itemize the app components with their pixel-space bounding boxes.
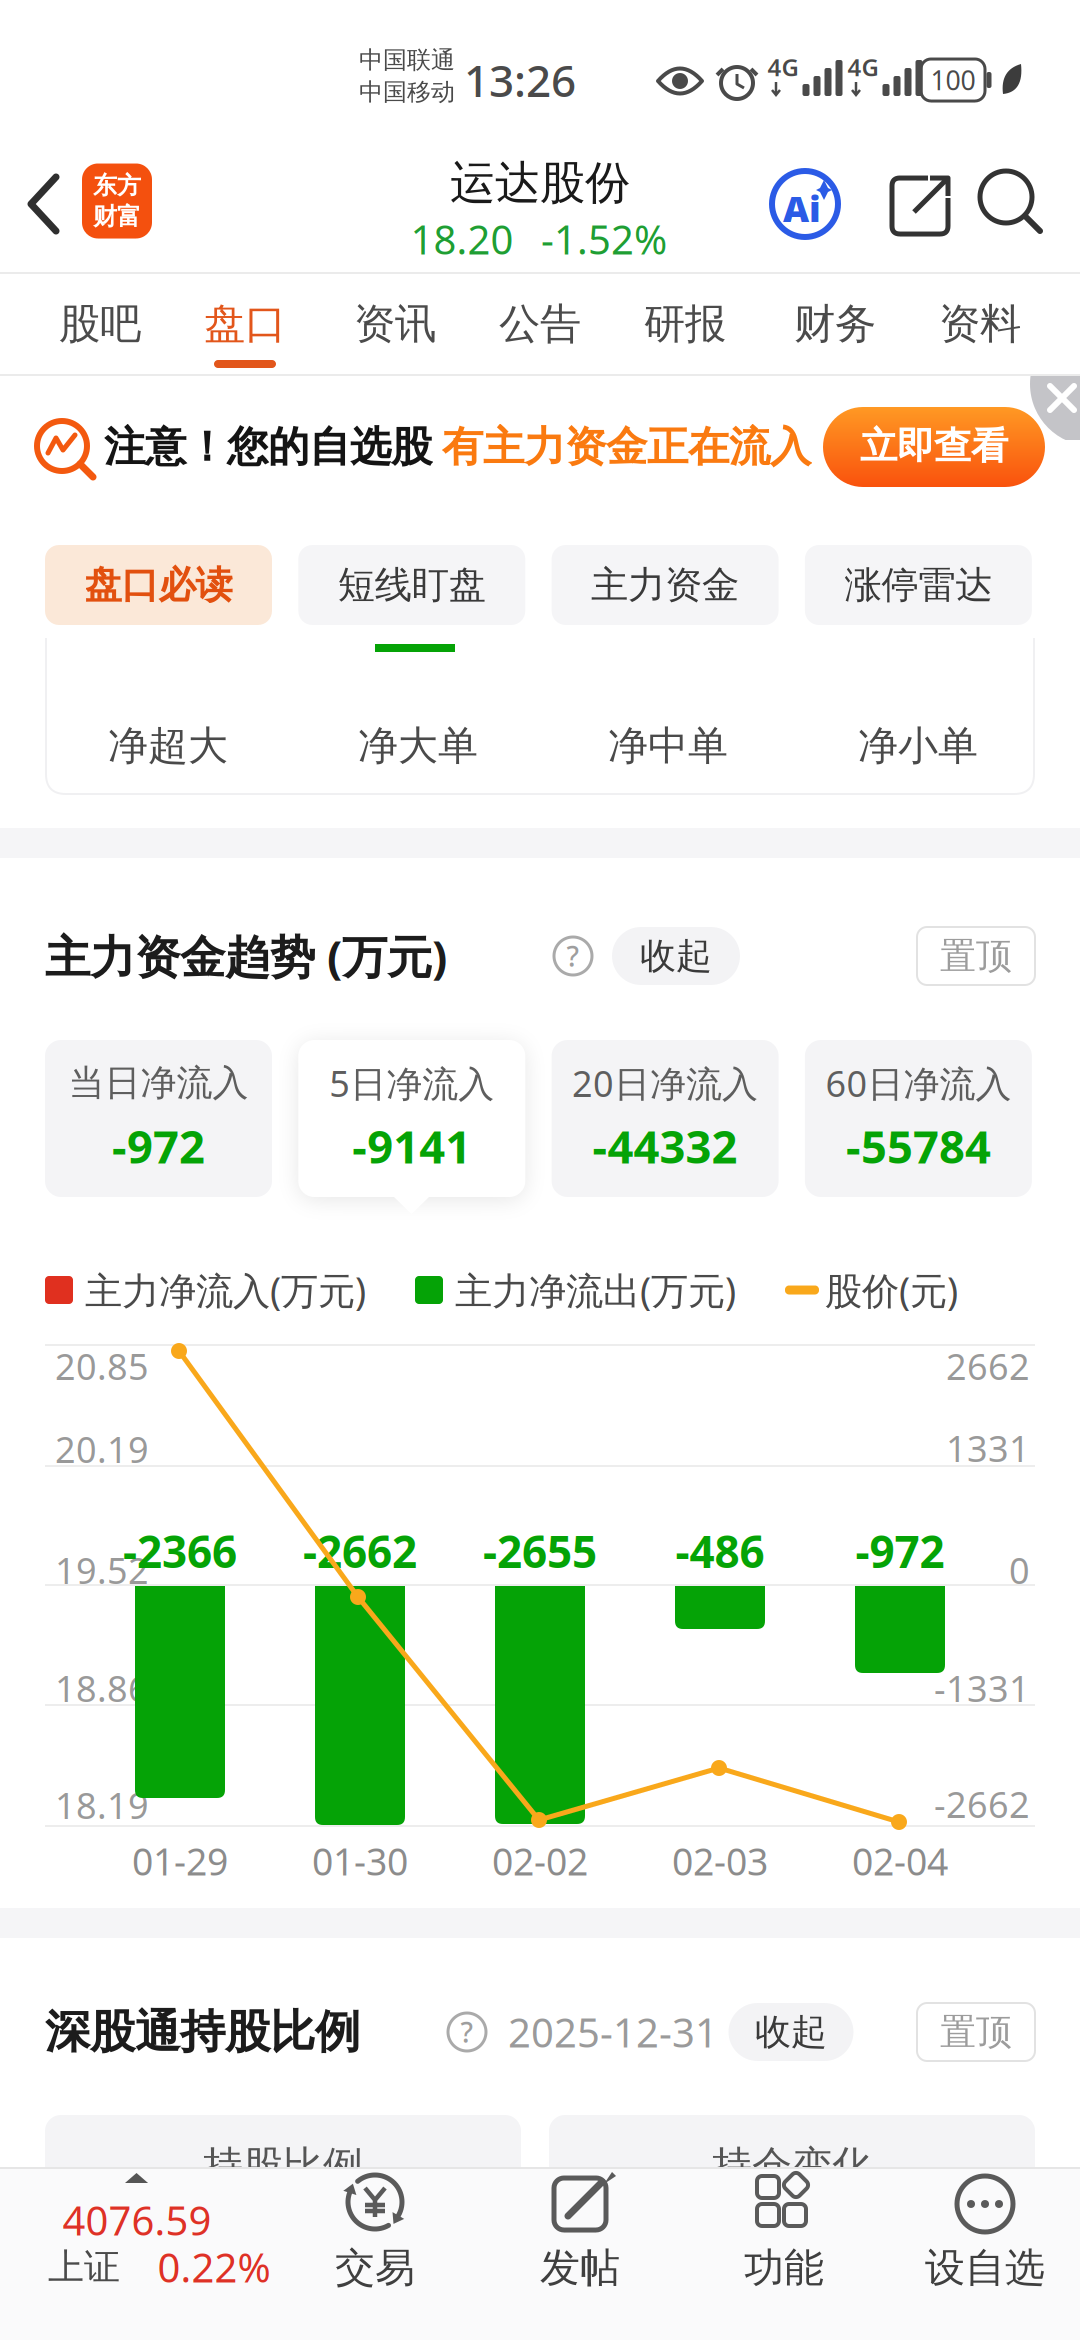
staticText: 5日净流入 bbox=[329, 1059, 494, 1107]
staticText: 2662 bbox=[946, 1342, 1030, 1390]
staticText: 资料 bbox=[939, 299, 1021, 349]
staticText: 60日净流入 bbox=[825, 1059, 1011, 1107]
button[interactable]: 资料 bbox=[930, 299, 1030, 349]
staticText: 主力资金 bbox=[591, 562, 739, 608]
staticText: 100 bbox=[930, 62, 975, 98]
button[interactable]: 20日净流入 bbox=[552, 1040, 779, 1197]
button[interactable]: 股吧 bbox=[50, 299, 150, 349]
staticText: 股吧 bbox=[59, 299, 141, 349]
staticText: 中国联通 bbox=[359, 45, 455, 75]
staticText: 持股比例 bbox=[203, 2141, 363, 2190]
button[interactable]: Close bbox=[990, 376, 1080, 440]
button[interactable]: 置顶 bbox=[917, 927, 1035, 985]
staticText: 净小单 bbox=[858, 721, 978, 770]
button[interactable]: 60日净流入 bbox=[805, 1040, 1032, 1197]
staticText: -1331 bbox=[934, 1664, 1030, 1712]
button[interactable]: 立即查看 bbox=[823, 407, 1045, 487]
staticText: 当日净流入 bbox=[68, 1061, 248, 1105]
button[interactable]: 发帖 bbox=[500, 2172, 660, 2302]
staticText: 交易 bbox=[335, 2243, 415, 2292]
button[interactable]: 资讯 bbox=[345, 299, 445, 349]
staticText: -9141 bbox=[352, 1116, 471, 1176]
staticText: 13:26 bbox=[464, 51, 576, 109]
staticText: 公告 bbox=[499, 299, 581, 349]
button[interactable]: 盘口必读 bbox=[45, 545, 272, 625]
staticText: -55784 bbox=[846, 1116, 991, 1176]
button[interactable]: Help bbox=[448, 2013, 486, 2051]
staticText: 运达股份 bbox=[450, 155, 630, 211]
staticText: 立即查看 bbox=[860, 423, 1008, 469]
staticText: -2662 bbox=[934, 1780, 1030, 1828]
staticText: 2025-12-31 bbox=[508, 2005, 718, 2058]
staticText: 持仓变化 bbox=[712, 2141, 872, 2190]
button[interactable]: 功能 bbox=[704, 2172, 864, 2302]
button[interactable]: 上证指数 bbox=[20, 2172, 260, 2302]
staticText: 4G bbox=[847, 51, 878, 83]
staticText: 主力资金趋势 (万元) bbox=[45, 926, 447, 986]
button[interactable]: 短线盯盘 bbox=[298, 545, 525, 625]
button[interactable]: 设自选 bbox=[905, 2172, 1065, 2302]
staticText: 短线盯盘 bbox=[338, 562, 486, 608]
staticText: 发帖 bbox=[540, 2243, 620, 2292]
staticText: 1331 bbox=[946, 1424, 1030, 1472]
staticText: 财务 bbox=[794, 299, 876, 349]
staticText: 盘口 bbox=[204, 299, 286, 349]
staticText: -2366 bbox=[123, 1522, 237, 1580]
staticText: 02-02 bbox=[492, 1836, 588, 1886]
staticText: 主力净流出(万元) bbox=[455, 1265, 736, 1315]
button[interactable]: 主力资金 bbox=[552, 545, 779, 625]
staticText: -486 bbox=[675, 1522, 764, 1580]
button[interactable]: Help bbox=[554, 937, 592, 975]
staticText: 财富 bbox=[93, 202, 141, 231]
staticText: -1.52% bbox=[541, 212, 667, 265]
staticText: 东方 bbox=[93, 171, 141, 200]
button[interactable]: 财务 bbox=[785, 299, 885, 349]
button[interactable]: 当日净流入 bbox=[45, 1040, 272, 1197]
staticText: 4G bbox=[767, 51, 798, 83]
staticText: 置顶 bbox=[940, 934, 1012, 978]
staticText: 收起 bbox=[755, 2010, 827, 2054]
staticText: 盘口必读 bbox=[84, 562, 232, 608]
staticText: 20日净流入 bbox=[572, 1059, 758, 1107]
staticText: -972 bbox=[112, 1116, 205, 1176]
staticText: 18.19 bbox=[55, 1781, 149, 1829]
staticText: 净中单 bbox=[608, 721, 728, 770]
button[interactable]: 东方财富 bbox=[82, 163, 152, 238]
button[interactable]: 盘口 bbox=[195, 299, 295, 349]
staticText: 置顶 bbox=[940, 2010, 1012, 2054]
staticText: 涨停雷达 bbox=[844, 562, 992, 608]
staticText: 主力净流入(万元) bbox=[85, 1265, 366, 1315]
staticText: 18.86 bbox=[55, 1664, 149, 1712]
staticText: 0.22% bbox=[157, 2240, 270, 2293]
button[interactable]: 收起 bbox=[612, 927, 740, 985]
staticText: ? bbox=[566, 937, 579, 975]
button[interactable]: AI assistant bbox=[772, 171, 838, 237]
button[interactable]: 公告 bbox=[490, 299, 590, 349]
staticText: 中国移动 bbox=[359, 77, 455, 107]
staticText: 18.20 bbox=[410, 212, 513, 265]
button[interactable]: Search bbox=[980, 171, 1042, 233]
staticText: 研报 bbox=[644, 299, 726, 349]
staticText: -2655 bbox=[483, 1522, 597, 1580]
button[interactable]: 涨停雷达 bbox=[805, 545, 1032, 625]
button[interactable]: 5日净流入 bbox=[298, 1040, 525, 1197]
staticText: Ai bbox=[783, 184, 821, 232]
button[interactable]: Share bbox=[888, 174, 952, 238]
staticText: 设自选 bbox=[925, 2243, 1045, 2292]
staticText: 收起 bbox=[640, 934, 712, 978]
staticText: -972 bbox=[855, 1522, 944, 1580]
button[interactable]: 收起 bbox=[728, 2003, 853, 2061]
staticText: 深股通持股比例 bbox=[45, 2004, 360, 2060]
staticText: 02-03 bbox=[672, 1836, 768, 1886]
button[interactable]: 交易 bbox=[295, 2172, 455, 2302]
staticText: 19.52 bbox=[55, 1546, 149, 1594]
staticText: -44332 bbox=[593, 1116, 738, 1176]
staticText: 02-04 bbox=[852, 1836, 948, 1886]
staticText: 功能 bbox=[744, 2243, 824, 2292]
staticText: 4076.59 bbox=[62, 2193, 211, 2246]
button[interactable]: 研报 bbox=[635, 299, 735, 349]
button[interactable]: 置顶 bbox=[917, 2003, 1035, 2061]
staticText: 01-29 bbox=[132, 1836, 228, 1886]
staticText: 资讯 bbox=[354, 299, 436, 349]
